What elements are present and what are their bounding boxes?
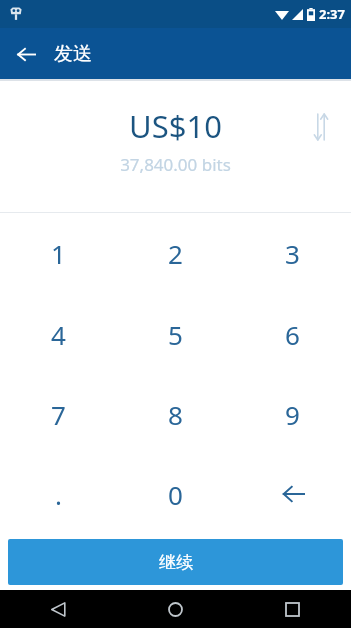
- button[interactable]: Recent apps: [234, 590, 351, 628]
- button[interactable]: 继续: [8, 539, 343, 585]
- button[interactable]: 9: [234, 374, 351, 454]
- staticText: 发送: [54, 42, 92, 66]
- staticText: 0: [168, 477, 183, 512]
- button[interactable]: 2: [117, 213, 234, 294]
- staticText: 37,840.00 bits: [120, 153, 231, 176]
- staticText: 7: [51, 397, 66, 432]
- staticText: 2:37: [319, 5, 345, 23]
- staticText: 2: [168, 236, 183, 271]
- button[interactable]: 6: [234, 294, 351, 374]
- staticText: 9: [285, 397, 300, 432]
- button[interactable]: 5: [117, 294, 234, 374]
- staticText: 4: [51, 317, 66, 352]
- button[interactable]: 3: [234, 213, 351, 294]
- staticText: 3: [285, 236, 300, 271]
- button[interactable]: 7: [0, 374, 117, 454]
- staticText: 继续: [159, 552, 193, 573]
- button[interactable]: Swap currency: [301, 107, 341, 147]
- button[interactable]: 8: [117, 374, 234, 454]
- button[interactable]: .: [0, 454, 117, 534]
- staticText: 5: [168, 317, 183, 352]
- staticText: US$10: [129, 105, 222, 147]
- staticText: 6: [285, 317, 300, 352]
- button[interactable]: Backspace: [234, 454, 351, 534]
- staticText: 8: [168, 397, 183, 432]
- button[interactable]: 1: [0, 213, 117, 294]
- button[interactable]: Back: [6, 34, 46, 74]
- button[interactable]: 4: [0, 294, 117, 374]
- button[interactable]: 0: [117, 454, 234, 534]
- button[interactable]: Home: [117, 590, 234, 628]
- button[interactable]: Back: [0, 590, 117, 628]
- staticText: .: [55, 477, 62, 512]
- staticText: 1: [51, 236, 66, 271]
